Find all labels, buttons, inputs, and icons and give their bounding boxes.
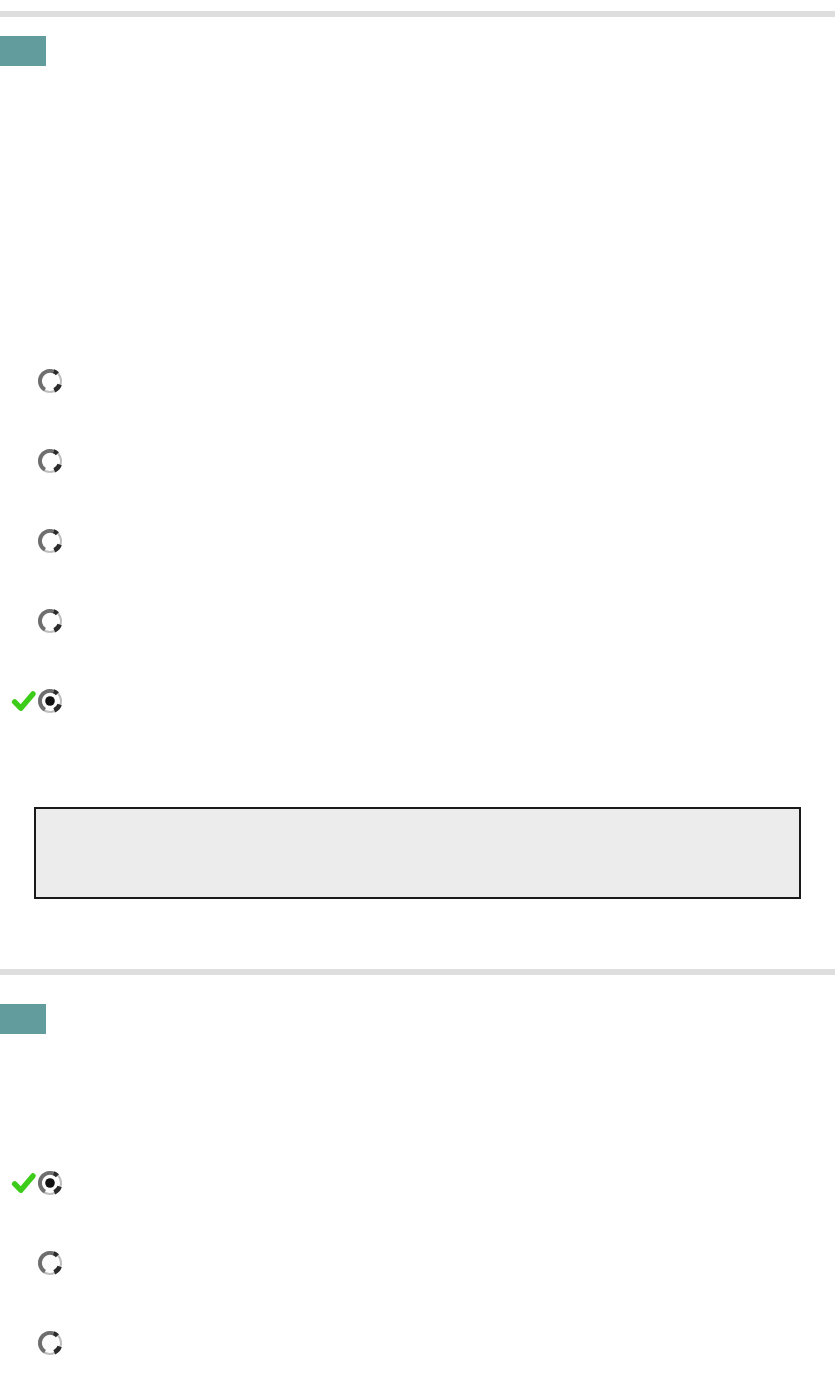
button[interactable]: Option B xyxy=(0,1223,835,1303)
button[interactable]: Option C xyxy=(0,1303,835,1383)
button[interactable]: Option 3 xyxy=(0,501,835,581)
button[interactable]: Option 2 xyxy=(0,421,835,501)
button[interactable]: Option A, selected xyxy=(0,1143,835,1223)
button[interactable]: Option 1 xyxy=(0,341,835,421)
button[interactable]: Answer text field xyxy=(34,807,801,899)
button[interactable]: Option 5, selected xyxy=(0,661,835,741)
button[interactable]: Option 4 xyxy=(0,581,835,661)
